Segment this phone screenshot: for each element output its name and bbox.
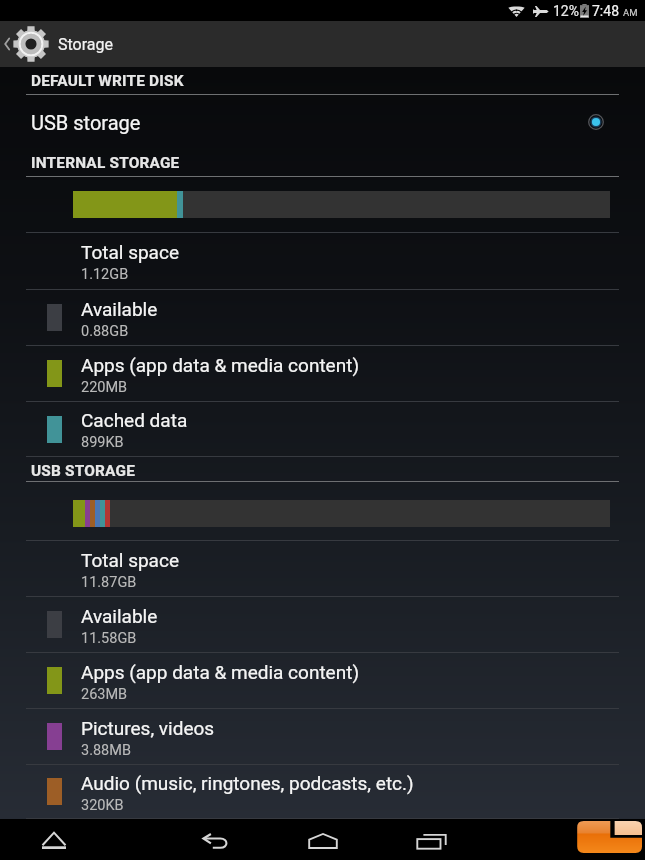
button[interactable]: Available	[0, 597, 645, 652]
button[interactable]: Cached data	[0, 402, 645, 456]
other: Navigate up	[2, 34, 12, 54]
button[interactable]: Available	[0, 290, 645, 345]
button[interactable]: Home	[300, 820, 346, 860]
button[interactable]: Eject	[32, 820, 76, 860]
staticText: 220MB	[81, 379, 128, 396]
staticText: INTERNAL STORAGE	[31, 154, 180, 172]
staticText: Apps (app data & media content)	[81, 661, 359, 683]
staticText: DEFAULT WRITE DISK	[31, 72, 184, 90]
staticText: Apps (app data & media content)	[81, 354, 359, 376]
button[interactable]: Total space	[0, 541, 645, 596]
staticText: 1.12GB	[81, 266, 129, 283]
button[interactable]: USB storage	[0, 95, 645, 149]
button[interactable]: Apps (app data & media content)	[0, 346, 645, 401]
button[interactable]: Apps (app data & media content)	[0, 653, 645, 708]
button[interactable]: Navigate up	[0, 21, 645, 67]
staticText: USB STORAGE	[31, 462, 136, 480]
staticText: 320KB	[81, 797, 124, 814]
button[interactable]: Audio (music, ringtones, podcasts, etc.)	[0, 765, 645, 818]
staticText: Available	[81, 298, 158, 320]
staticText: Storage	[58, 35, 113, 54]
staticText: Total space	[81, 549, 179, 571]
button[interactable]: Pictures, videos	[0, 709, 645, 764]
staticText: 3.88MB	[81, 742, 131, 759]
button[interactable]: Total space	[0, 233, 645, 289]
button[interactable]: Back	[193, 821, 237, 860]
staticText: Audio (music, ringtones, podcasts, etc.)	[81, 772, 414, 794]
staticText: USB storage	[31, 111, 141, 134]
staticText: 899KB	[81, 434, 124, 451]
staticText: Available	[81, 605, 158, 627]
staticText: Pictures, videos	[81, 717, 215, 739]
staticText: 0.88GB	[81, 323, 129, 340]
staticText: 263MB	[81, 686, 128, 703]
staticText: Total space	[81, 241, 179, 263]
staticText: Cached data	[81, 409, 188, 431]
button[interactable]: Recents	[409, 821, 453, 860]
staticText: 7:48	[592, 3, 619, 19]
staticText: AM	[623, 7, 638, 18]
staticText: 11.58GB	[81, 630, 137, 647]
staticText: 11.87GB	[81, 574, 137, 591]
staticText: 12%	[553, 3, 579, 19]
